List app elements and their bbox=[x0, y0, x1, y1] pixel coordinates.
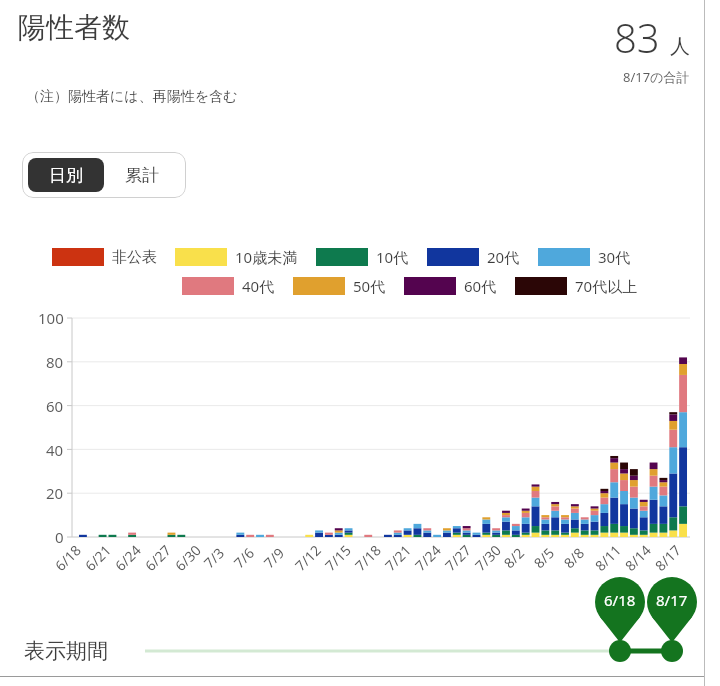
staticText: 8/11 bbox=[591, 540, 625, 575]
staticText: 8/5 bbox=[529, 543, 558, 572]
button[interactable]: 開始日 6/18 bbox=[605, 635, 637, 667]
staticText: 10代 bbox=[376, 247, 409, 267]
staticText: 8/8 bbox=[559, 543, 588, 572]
staticText: 30代 bbox=[598, 247, 631, 267]
staticText: 40 bbox=[46, 440, 64, 460]
staticText: 6/30 bbox=[171, 540, 205, 575]
staticText: 60 bbox=[46, 396, 64, 416]
staticText: 7/21 bbox=[381, 540, 415, 575]
staticText: 表示期間 bbox=[24, 638, 108, 664]
staticText: 7/12 bbox=[291, 540, 325, 575]
staticText: 6/27 bbox=[141, 540, 175, 575]
staticText: 8/14 bbox=[621, 540, 655, 575]
staticText: （注）陽性者には、再陽性を含む bbox=[26, 88, 238, 106]
staticText: 0 bbox=[55, 527, 64, 547]
staticText: 70代以上 bbox=[575, 276, 638, 296]
staticText: 7/18 bbox=[351, 540, 385, 575]
staticText: 10歳未満 bbox=[235, 247, 298, 267]
staticText: 20代 bbox=[487, 247, 520, 267]
staticText: 7/15 bbox=[321, 540, 355, 575]
button[interactable]: 終了日 8/17 bbox=[657, 635, 689, 667]
staticText: 7/3 bbox=[199, 543, 228, 572]
staticText: 日別 bbox=[49, 165, 83, 186]
staticText: 7/27 bbox=[441, 540, 475, 575]
staticText: 20 bbox=[46, 483, 64, 503]
staticText: 100 bbox=[38, 308, 64, 328]
staticText: 83 bbox=[614, 10, 660, 64]
staticText: 非公表 bbox=[112, 248, 157, 267]
staticText: 8/2 bbox=[499, 543, 528, 572]
staticText: 60代 bbox=[464, 276, 497, 296]
staticText: 6/24 bbox=[111, 540, 145, 575]
staticText: 7/30 bbox=[471, 540, 505, 575]
staticText: 7/9 bbox=[259, 543, 288, 572]
staticText: 40代 bbox=[242, 276, 275, 296]
staticText: 6/18 bbox=[51, 540, 85, 575]
staticText: 8/17 bbox=[651, 540, 685, 575]
staticText: 80 bbox=[46, 352, 64, 372]
staticText: 7/24 bbox=[411, 540, 445, 575]
staticText: 8/17の合計 bbox=[623, 68, 690, 86]
button[interactable]: 日別 bbox=[28, 158, 104, 192]
staticText: 50代 bbox=[353, 276, 386, 296]
staticText: 累計 bbox=[125, 165, 159, 186]
button[interactable]: 累計 bbox=[104, 158, 180, 192]
staticText: 陽性者数 bbox=[18, 10, 130, 45]
staticText: 6/21 bbox=[81, 540, 115, 575]
staticText: 8/17 bbox=[656, 590, 688, 610]
staticText: 7/6 bbox=[229, 543, 258, 572]
staticText: 6/18 bbox=[604, 590, 636, 610]
staticText: 人 bbox=[670, 34, 690, 59]
